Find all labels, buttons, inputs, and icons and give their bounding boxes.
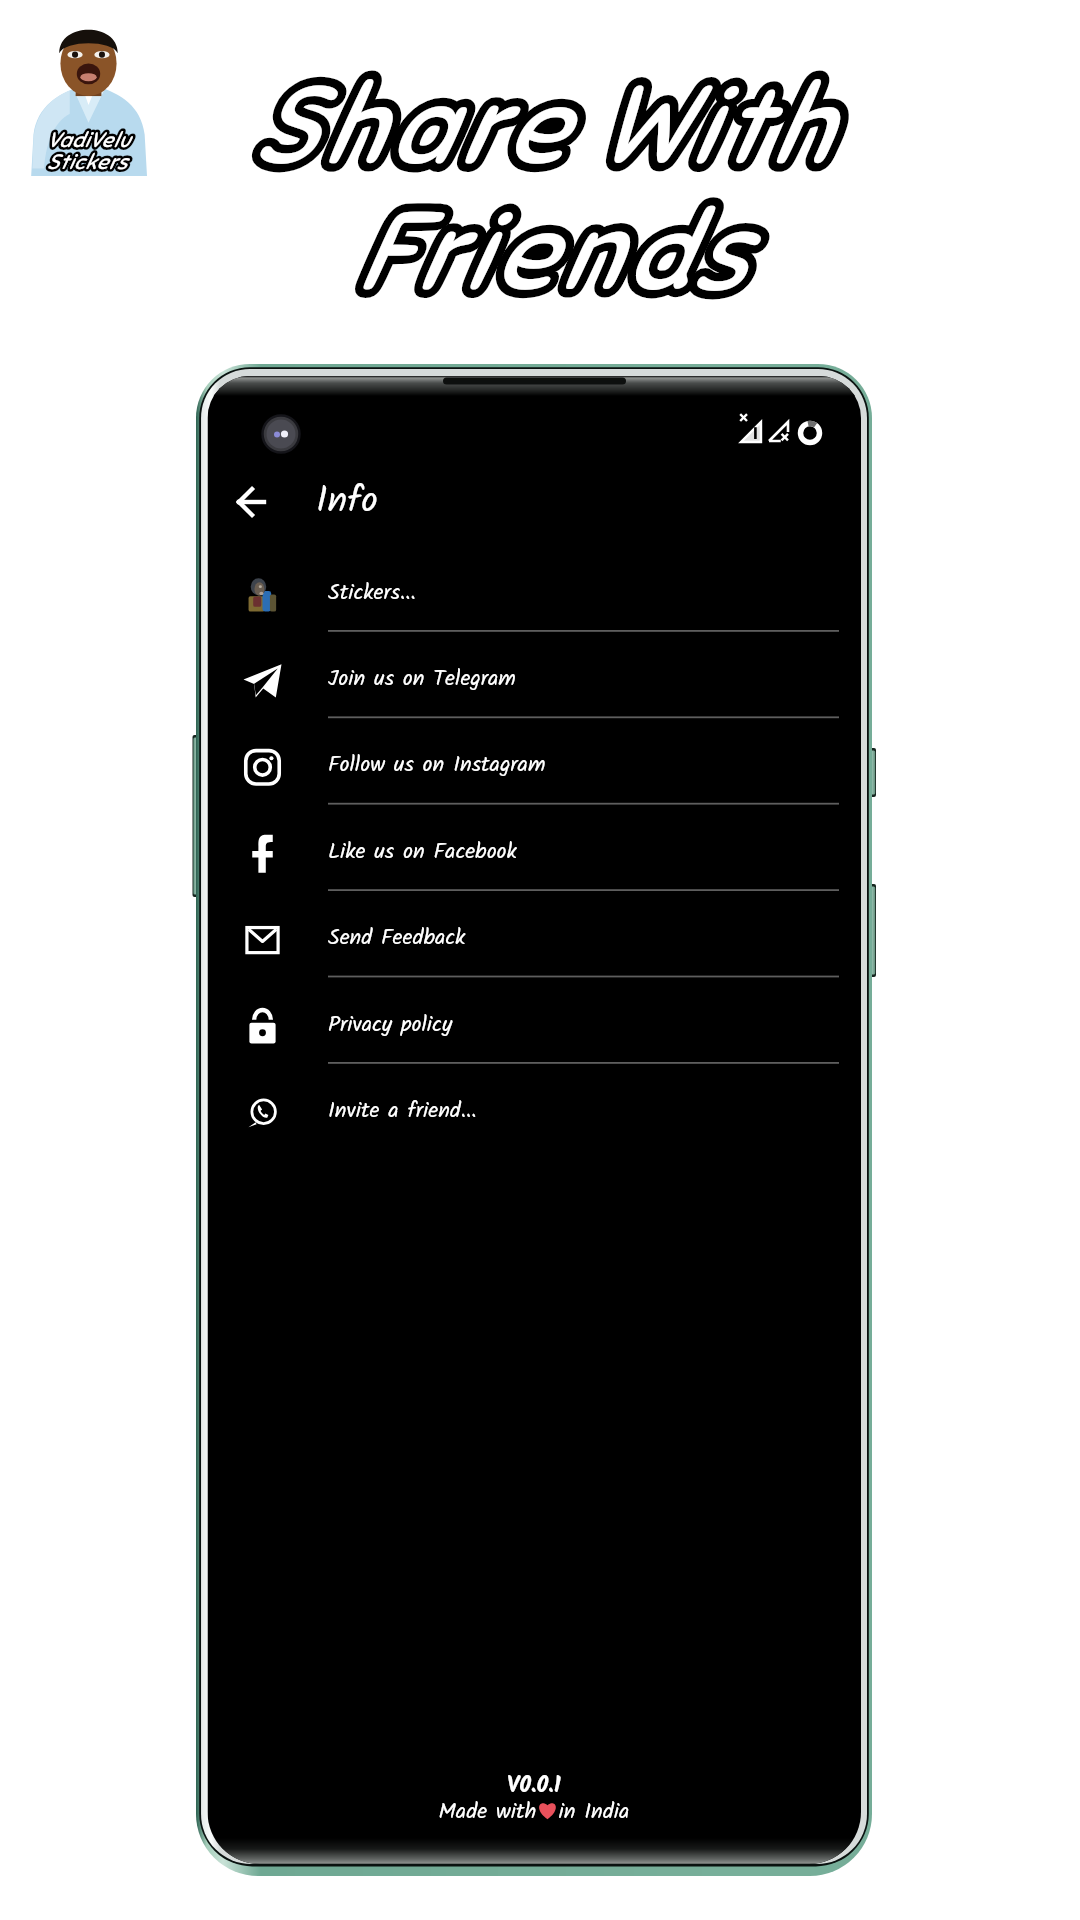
button[interactable]: Back xyxy=(222,466,292,536)
button[interactable]: Join us on Telegram xyxy=(208,630,862,716)
button[interactable]: Like us on Facebook xyxy=(208,803,862,889)
button[interactable]: Stickers... xyxy=(208,544,862,630)
button[interactable]: Privacy policy xyxy=(208,976,862,1062)
button[interactable]: Invite a friend... xyxy=(208,1062,862,1148)
button[interactable]: Send Feedback xyxy=(208,889,862,975)
button[interactable]: Follow us on Instagram xyxy=(208,716,862,802)
